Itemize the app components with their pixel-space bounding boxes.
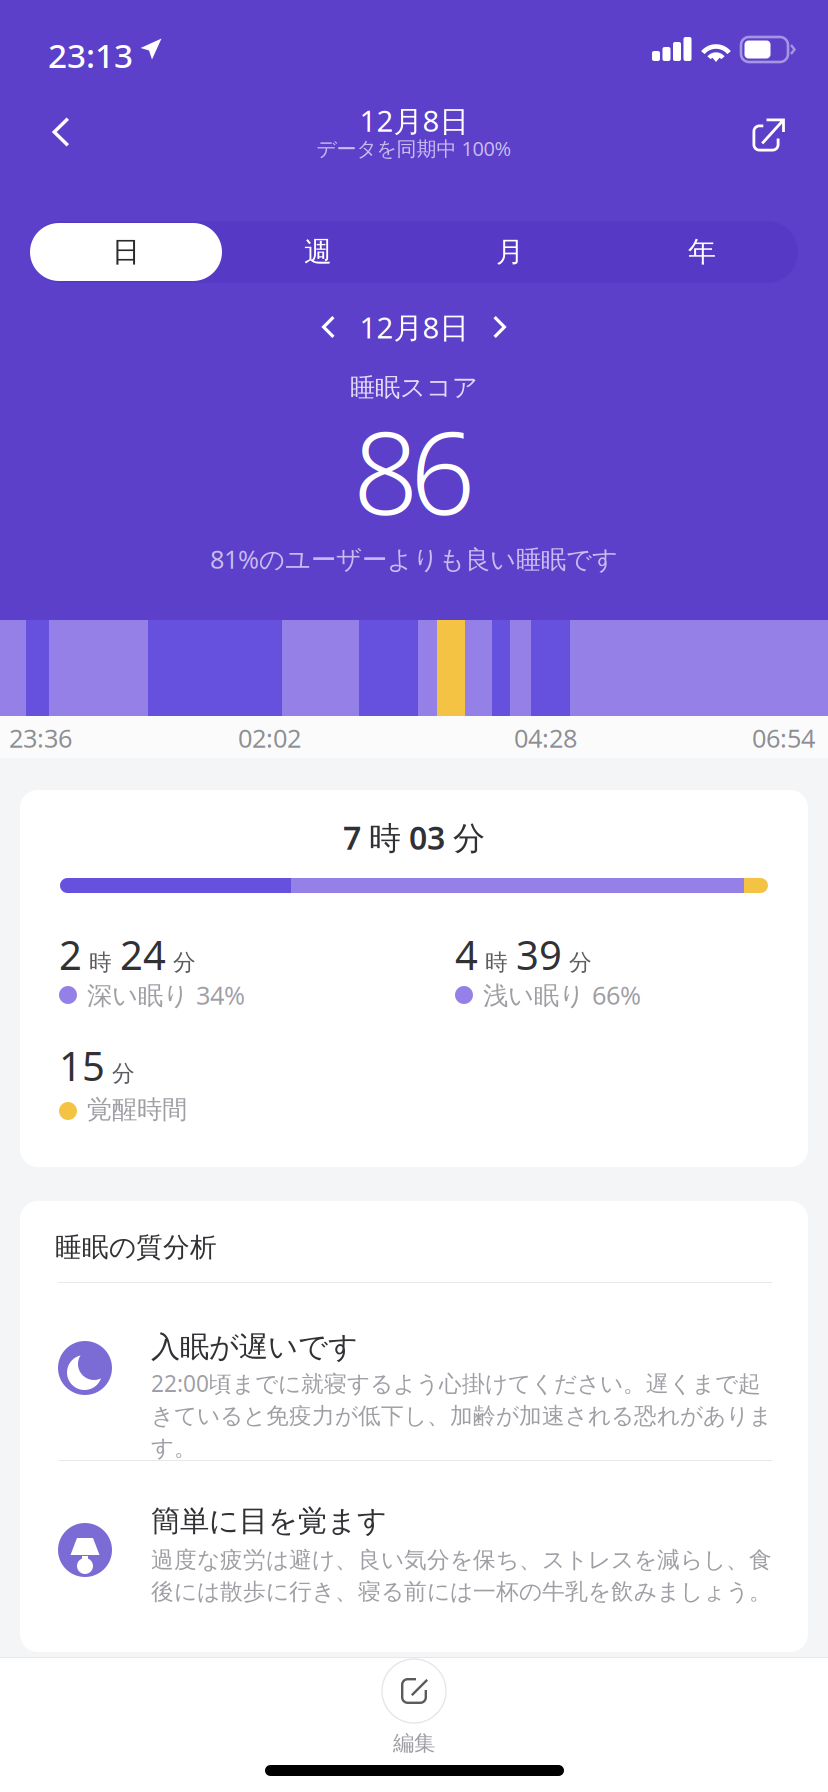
- staticText: 86: [353, 394, 475, 546]
- staticText: 06:54: [752, 721, 815, 755]
- button[interactable]: 月: [414, 221, 606, 283]
- staticText: 12月8日: [359, 101, 468, 140]
- staticText: 7 時 03 分: [343, 816, 485, 858]
- button[interactable]: Back: [13, 99, 109, 165]
- staticText: 分: [173, 949, 196, 976]
- staticText: 入眠が遅いです: [151, 1329, 358, 1365]
- staticText: 22:00頃までに就寝するよう心掛けてください。遅くまで起きていると免疫力が低下…: [151, 1368, 772, 1462]
- staticText: 23:13: [48, 33, 133, 77]
- staticText: 週: [304, 235, 332, 269]
- button[interactable]: 編集: [314, 1659, 514, 1756]
- staticText: 時: [89, 949, 112, 976]
- staticText: 年: [688, 235, 716, 269]
- staticText: 4: [455, 928, 478, 981]
- staticText: 15: [59, 1039, 105, 1092]
- staticText: 編集: [393, 1730, 435, 1756]
- staticText: 02:02: [238, 721, 301, 755]
- staticText: 簡単に目を覚ます: [151, 1503, 387, 1539]
- staticText: 23:36: [9, 721, 72, 755]
- staticText: 過度な疲労は避け、良い気分を保ち、ストレスを減らし、食後には散歩に行き、寝る前に…: [151, 1546, 772, 1606]
- staticText: 日: [112, 235, 140, 269]
- button[interactable]: Share: [721, 102, 817, 168]
- staticText: 39: [516, 928, 562, 981]
- button[interactable]: Previous day: [297, 299, 359, 355]
- button[interactable]: Next day: [468, 299, 530, 355]
- staticText: 分: [569, 949, 592, 976]
- staticText: データを同期中 100%: [316, 135, 511, 162]
- staticText: 睡眠スコア: [350, 372, 478, 403]
- staticText: 81%のユーザーよりも良い睡眠です: [210, 542, 618, 576]
- staticText: 24: [120, 928, 166, 981]
- staticText: 月: [496, 235, 524, 269]
- staticText: 覚醒時間: [87, 1094, 187, 1125]
- staticText: 時: [485, 949, 508, 976]
- staticText: 浅い眠り 66%: [483, 978, 641, 1012]
- staticText: 04:28: [514, 721, 577, 755]
- button[interactable]: 日: [30, 221, 222, 283]
- button[interactable]: 年: [606, 221, 798, 283]
- staticText: 2: [59, 928, 82, 981]
- staticText: 睡眠の質分析: [55, 1231, 217, 1264]
- button[interactable]: 週: [222, 221, 414, 283]
- staticText: 分: [112, 1060, 135, 1087]
- staticText: 深い眠り 34%: [87, 978, 245, 1012]
- staticText: 12月8日: [359, 307, 468, 346]
